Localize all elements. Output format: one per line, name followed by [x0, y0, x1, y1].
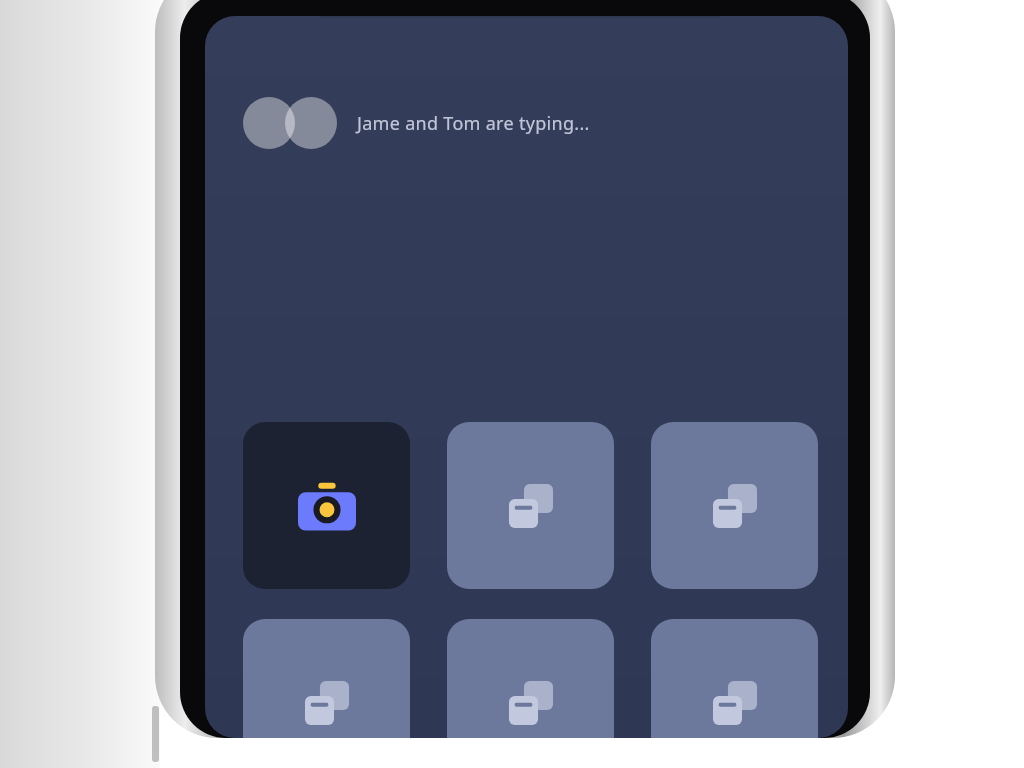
button[interactable]: Placeholder item [651, 619, 818, 738]
button[interactable]: Placeholder item [447, 619, 614, 738]
button[interactable]: Camera [243, 422, 410, 589]
staticText: Jame and Tom are typing... [357, 111, 590, 136]
button[interactable]: Placeholder item [651, 422, 818, 589]
button[interactable]: Placeholder item [243, 619, 410, 738]
button[interactable]: Jame and Tom are typing... [243, 92, 590, 154]
button[interactable]: Placeholder item [447, 422, 614, 589]
